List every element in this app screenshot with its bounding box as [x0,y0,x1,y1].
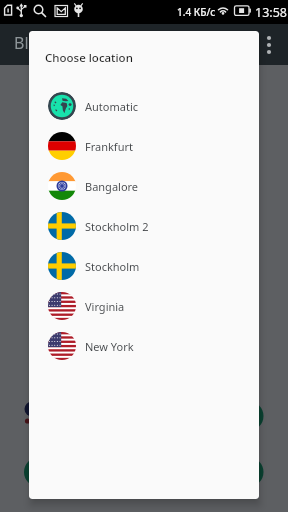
button[interactable]: Frankfurt [29,126,259,166]
staticText: 13:58 [255,4,287,21]
staticText: 1.4 КБ/с [177,5,216,19]
staticText: Frankfurt [85,139,133,154]
button[interactable]: Bangalore [29,166,259,206]
button[interactable]: Stockholm 2 [29,206,259,246]
staticText: Bangalore [85,179,139,194]
button[interactable]: Virginia [29,286,259,326]
button[interactable]: More options [259,35,279,55]
staticText: Virginia [85,299,125,314]
staticText: Automatic [85,99,138,114]
staticText: Stockholm [85,259,140,274]
staticText: Stockholm 2 [85,219,149,234]
staticText: Choose location [45,50,133,66]
button[interactable]: New York [29,326,259,366]
staticText: Blokada [14,32,75,54]
button[interactable]: Stockholm [29,246,259,286]
button[interactable]: Automatic [29,86,259,126]
staticText: New York [85,339,134,354]
